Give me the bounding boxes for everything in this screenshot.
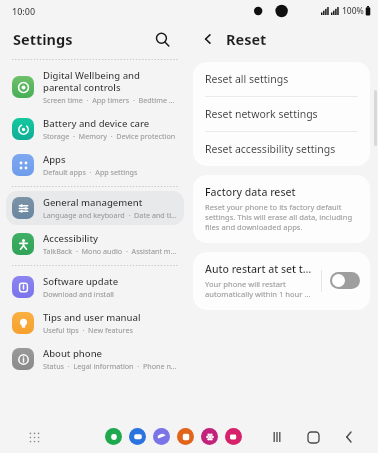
staticText: Useful tips · New features <box>43 325 133 335</box>
button[interactable]: Factory data reset <box>193 175 370 243</box>
staticText: Reset network settings <box>205 107 318 121</box>
staticText: Reset accessibility settings <box>205 142 336 156</box>
button[interactable]: Camera <box>225 428 242 445</box>
button[interactable]: Search <box>149 26 175 52</box>
button[interactable]: Tips and user manual <box>6 306 184 340</box>
staticText: Auto restart at set times <box>205 262 313 276</box>
button[interactable]: Apps <box>6 148 184 182</box>
button[interactable]: General management <box>6 191 184 225</box>
button[interactable]: About phone <box>6 342 184 376</box>
staticText: Digital Wellbeing and parental controls <box>43 69 178 94</box>
staticText: Screen time · App timers · Bedtime mode <box>43 95 178 105</box>
staticText: Status · Legal information · Phone name <box>43 361 178 371</box>
button[interactable]: All apps <box>24 427 44 447</box>
staticText: Factory data reset <box>205 185 296 199</box>
staticText: About phone <box>43 347 103 360</box>
staticText: TalkBack · Mono audio · Assistant menu <box>43 246 178 256</box>
staticText: Your phone will restart automatically wi… <box>205 279 313 299</box>
staticText: Apps <box>43 153 66 166</box>
staticText: Software update <box>43 275 119 288</box>
button[interactable]: Back <box>195 26 221 52</box>
staticText: 100% <box>342 5 364 17</box>
staticText: Reset your phone to its factory default … <box>205 202 358 232</box>
button[interactable]: Home <box>302 426 324 448</box>
button[interactable]: Battery and device care <box>6 112 184 146</box>
button[interactable]: Messages <box>129 428 146 445</box>
staticText: Reset <box>226 29 267 49</box>
staticText: General management <box>43 196 143 209</box>
button[interactable]: Phone <box>105 428 122 445</box>
button[interactable]: Auto restart at set times <box>193 252 370 310</box>
staticText: Download and install <box>43 289 114 299</box>
button[interactable]: Reset network settings <box>193 97 370 131</box>
button[interactable]: Reset accessibility settings <box>193 132 370 166</box>
button[interactable]: Digital Wellbeing and parental controls <box>6 64 184 110</box>
staticText: Tips and user manual <box>43 311 141 324</box>
button[interactable]: Accessibility <box>6 227 184 261</box>
staticText: Accessibility <box>43 232 99 245</box>
staticText: 10:00 <box>12 5 36 17</box>
button[interactable]: Back <box>338 426 360 448</box>
button[interactable]: Recents <box>266 426 288 448</box>
staticText: Battery and device care <box>43 117 150 130</box>
staticText: Default apps · App settings <box>43 167 138 177</box>
staticText: Storage · Memory · Device protection <box>43 131 176 141</box>
staticText: Settings <box>13 29 73 49</box>
staticText: Language and keyboard · Date and time <box>43 210 178 220</box>
button[interactable]: Auto restart toggle <box>330 272 360 289</box>
button[interactable]: Notes <box>177 428 194 445</box>
button[interactable]: Gallery <box>201 428 218 445</box>
button[interactable]: Software update <box>6 270 184 304</box>
button[interactable]: Internet <box>153 428 170 445</box>
button[interactable]: Reset all settings <box>193 62 370 96</box>
staticText: Reset all settings <box>205 72 289 86</box>
